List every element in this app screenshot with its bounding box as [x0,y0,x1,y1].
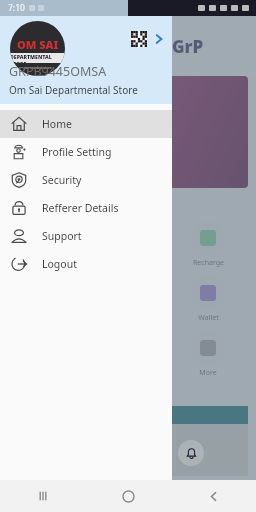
staticText: om sai dept store [24,65,52,70]
button[interactable] [31,221,65,255]
button[interactable] [191,276,225,310]
staticText: Security [42,173,82,187]
staticText: Home [42,117,72,131]
button[interactable]: Store logo [10,21,65,76]
button[interactable]: Home [0,110,172,138]
staticText: GrP [172,35,204,58]
button[interactable]: Support [0,222,172,250]
button[interactable]: Open profile [150,30,168,48]
staticText: DEPARTMENTAL STORE [10,53,65,63]
button[interactable]: QR code [131,31,147,47]
button[interactable]: Recent apps [0,480,86,512]
button[interactable]: Notifications [178,440,204,466]
button[interactable] [191,331,225,365]
staticText: Wallet [198,313,219,323]
button[interactable]: Profile Setting [0,138,172,166]
staticText: Recharge [193,258,224,268]
staticText: Logout [42,257,77,271]
staticText: GRPB9445OMSA [9,63,107,80]
staticText: Refferer Details [42,201,119,215]
staticText: 7:10 [8,2,25,14]
staticText: OM SAI [17,37,59,52]
staticText: Send Money [28,258,69,268]
button[interactable]: Refferer Details [0,194,172,222]
button[interactable]: Logout [0,250,172,278]
staticText: Om Sai Departmental Store [9,83,138,97]
button[interactable]: Back [171,480,256,512]
button[interactable]: Home [86,480,171,512]
staticText: Support [42,229,82,243]
button[interactable] [191,221,225,255]
staticText: Profile Setting [42,145,112,159]
staticText: More [199,368,217,378]
staticText: Explore [12,196,52,211]
button[interactable]: Security [0,166,172,194]
